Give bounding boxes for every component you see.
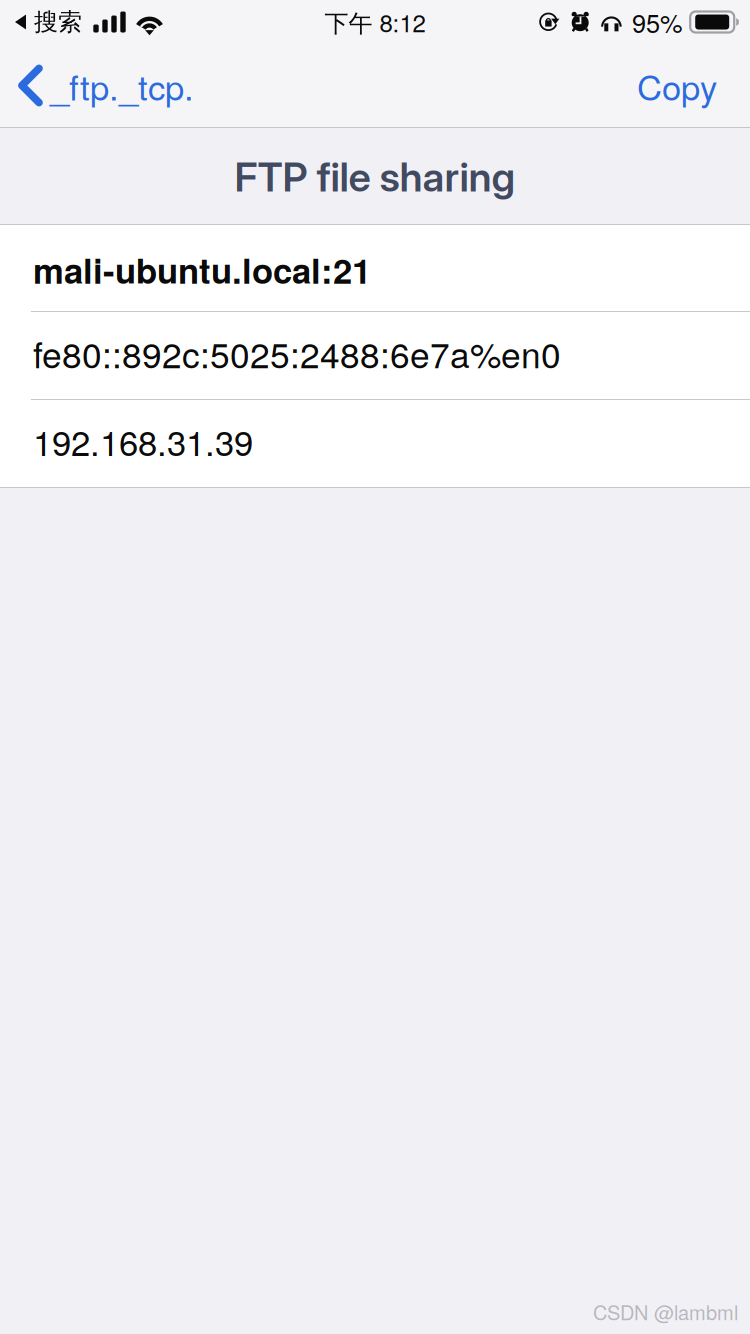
button[interactable]: 192.168.31.39 <box>0 400 750 487</box>
staticText: 95% <box>632 4 683 40</box>
staticText: _ftp._tcp. <box>50 61 194 110</box>
staticText: 192.168.31.39 <box>33 416 253 466</box>
staticText: fe80::892c:5025:2488:6e7a%en0 <box>33 328 561 378</box>
staticText: 下午 8:12 <box>324 5 425 39</box>
button[interactable]: fe80::892c:5025:2488:6e7a%en0 <box>0 312 750 400</box>
button[interactable]: mali-ubuntu.local:21 <box>0 225 750 312</box>
staticText: mali-ubuntu.local:21 <box>33 245 371 294</box>
staticText: Copy <box>637 61 717 110</box>
staticText: 搜索 <box>34 7 82 37</box>
button[interactable]: Copy <box>615 44 750 127</box>
button[interactable]: _ftp._tcp. <box>0 44 204 127</box>
staticText: CSDN @lambml <box>593 1297 738 1326</box>
staticText: FTP file sharing <box>234 153 515 201</box>
